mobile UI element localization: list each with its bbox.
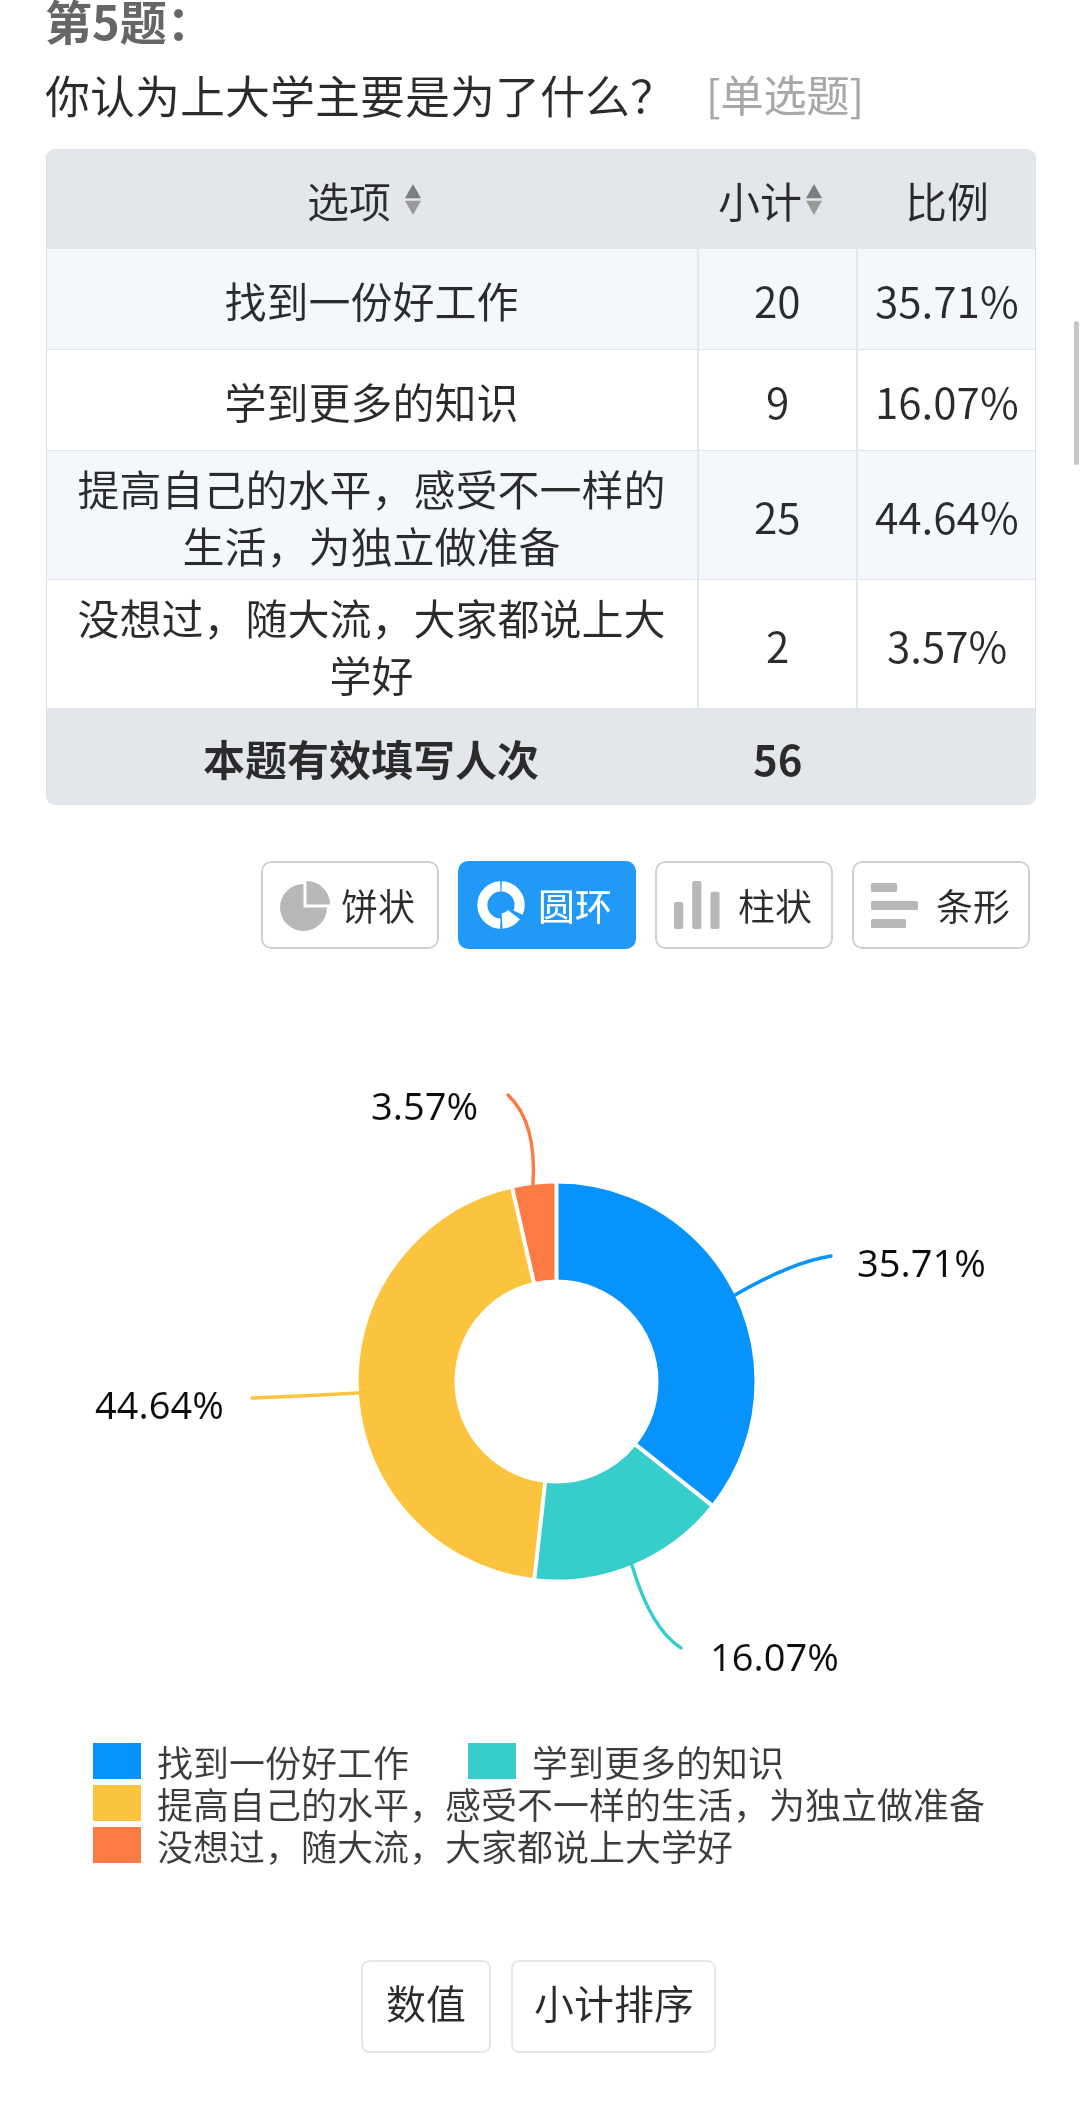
button[interactable]: 学到更多的知识 xyxy=(468,1735,785,1787)
staticText: 饼状 xyxy=(341,878,415,932)
staticText: [单选题] xyxy=(706,62,865,124)
other: Scroll position xyxy=(1074,321,1079,465)
staticText: 没想过，随大流，大家都说上大 学好 xyxy=(77,586,666,704)
button[interactable]: 选项 xyxy=(46,149,697,249)
staticText: 9 xyxy=(766,370,790,431)
staticText: 16.07% xyxy=(710,1630,839,1682)
staticText: 你认为上大学主要是为了什么？ xyxy=(45,62,676,127)
staticText: 25 xyxy=(754,485,801,546)
staticText: 柱状 xyxy=(738,878,812,932)
staticText: 没想过，随大流，大家都说上大学好 xyxy=(157,1819,734,1871)
button[interactable]: 柱状 xyxy=(655,861,833,949)
button[interactable]: 没想过，随大流，大家都说上大学好 xyxy=(93,1819,734,1871)
staticText: 圆环 xyxy=(538,878,612,932)
staticText: 35.71% xyxy=(857,1236,986,1288)
staticText: 条形 xyxy=(936,878,1010,932)
button[interactable]: 饼状 xyxy=(261,861,439,949)
staticText: 提高自己的水平，感受不一样的 生活，为独立做准备 xyxy=(77,457,666,575)
staticText: 学到更多的知识 xyxy=(532,1735,785,1787)
staticText: 16.07% xyxy=(875,370,1019,431)
staticText: 小计 xyxy=(718,169,803,230)
staticText: 提高自己的水平，感受不一样的生活，为独立做准备 xyxy=(157,1777,986,1829)
staticText: 2 xyxy=(766,614,790,675)
staticText: 学到更多的知识 xyxy=(224,370,519,431)
staticText: 44.64% xyxy=(875,485,1019,546)
staticText: 小计排序 xyxy=(534,1973,694,2031)
button[interactable]: 小计 xyxy=(699,149,856,249)
staticText: 数值 xyxy=(386,1973,466,2031)
staticText: 本题有效填写人次 xyxy=(203,727,540,788)
button[interactable]: 小计排序 xyxy=(511,1960,716,2053)
staticText: 35.71% xyxy=(875,269,1019,330)
staticText: 找到一份好工作 xyxy=(224,269,519,330)
staticText: 选项 xyxy=(307,169,392,230)
staticText: 20 xyxy=(754,269,801,330)
staticText: 找到一份好工作 xyxy=(157,1735,410,1787)
staticText: 3.57% xyxy=(371,1079,478,1131)
button[interactable]: 数值 xyxy=(361,1960,491,2053)
button[interactable]: 提高自己的水平，感受不一样的生活，为独立做准备 xyxy=(93,1777,986,1829)
staticText: 第5题： xyxy=(45,0,214,53)
staticText: 比例 xyxy=(905,169,990,230)
button[interactable]: 找到一份好工作 xyxy=(93,1735,410,1787)
staticText: 3.57% xyxy=(887,614,1008,675)
button[interactable]: 圆环 xyxy=(458,861,636,949)
staticText: 44.64% xyxy=(95,1378,224,1430)
staticText: 56 xyxy=(753,727,803,788)
button[interactable]: 条形 xyxy=(852,861,1030,949)
